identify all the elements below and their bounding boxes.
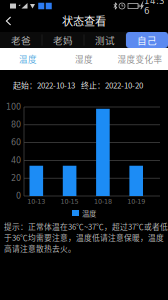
- button[interactable]: 测试: [84, 32, 126, 48]
- staticText: 10-13: [27, 198, 45, 205]
- staticText: 测试: [95, 33, 115, 47]
- staticText: 温度: [82, 208, 96, 218]
- staticText: 终止：2022-10-20: [81, 79, 143, 91]
- staticText: 老妈: [53, 33, 73, 47]
- staticText: 14:36: [144, 0, 165, 16]
- button[interactable]: 老爸: [0, 32, 42, 48]
- staticText: 80: [11, 120, 21, 129]
- button[interactable]: 自己: [126, 32, 168, 48]
- button[interactable]: 老妈: [42, 32, 84, 48]
- staticText: 0: [16, 191, 21, 201]
- staticText: 于36℃均需要注意，温度低请注意保暖，温度: [4, 232, 164, 243]
- staticText: 老爸: [11, 33, 31, 47]
- staticText: 状态查看: [62, 12, 106, 29]
- staticText: 10-19: [127, 198, 145, 205]
- staticText: 60: [11, 138, 21, 147]
- staticText: 40: [11, 156, 21, 165]
- staticText: 湿度变化率: [117, 53, 162, 65]
- staticText: 10-18: [94, 198, 112, 205]
- staticText: 起始：2022-10-13: [13, 79, 75, 91]
- staticText: 温度: [19, 53, 37, 65]
- button[interactable]: 温度: [0, 48, 56, 70]
- staticText: 100: [6, 102, 21, 112]
- staticText: 高请注意散热去火。: [4, 243, 76, 254]
- staticText: 自己: [137, 33, 157, 47]
- staticText: 10-15: [61, 198, 79, 205]
- staticText: 提示：正常体温在36℃~37℃，超过37℃或者低: [4, 221, 168, 232]
- staticText: 20: [11, 173, 21, 183]
- button[interactable]: 湿度: [56, 48, 112, 70]
- button[interactable]: 湿度变化率: [112, 48, 168, 70]
- staticText: 湿度: [75, 53, 93, 65]
- button[interactable]: 返回: [1, 12, 21, 30]
